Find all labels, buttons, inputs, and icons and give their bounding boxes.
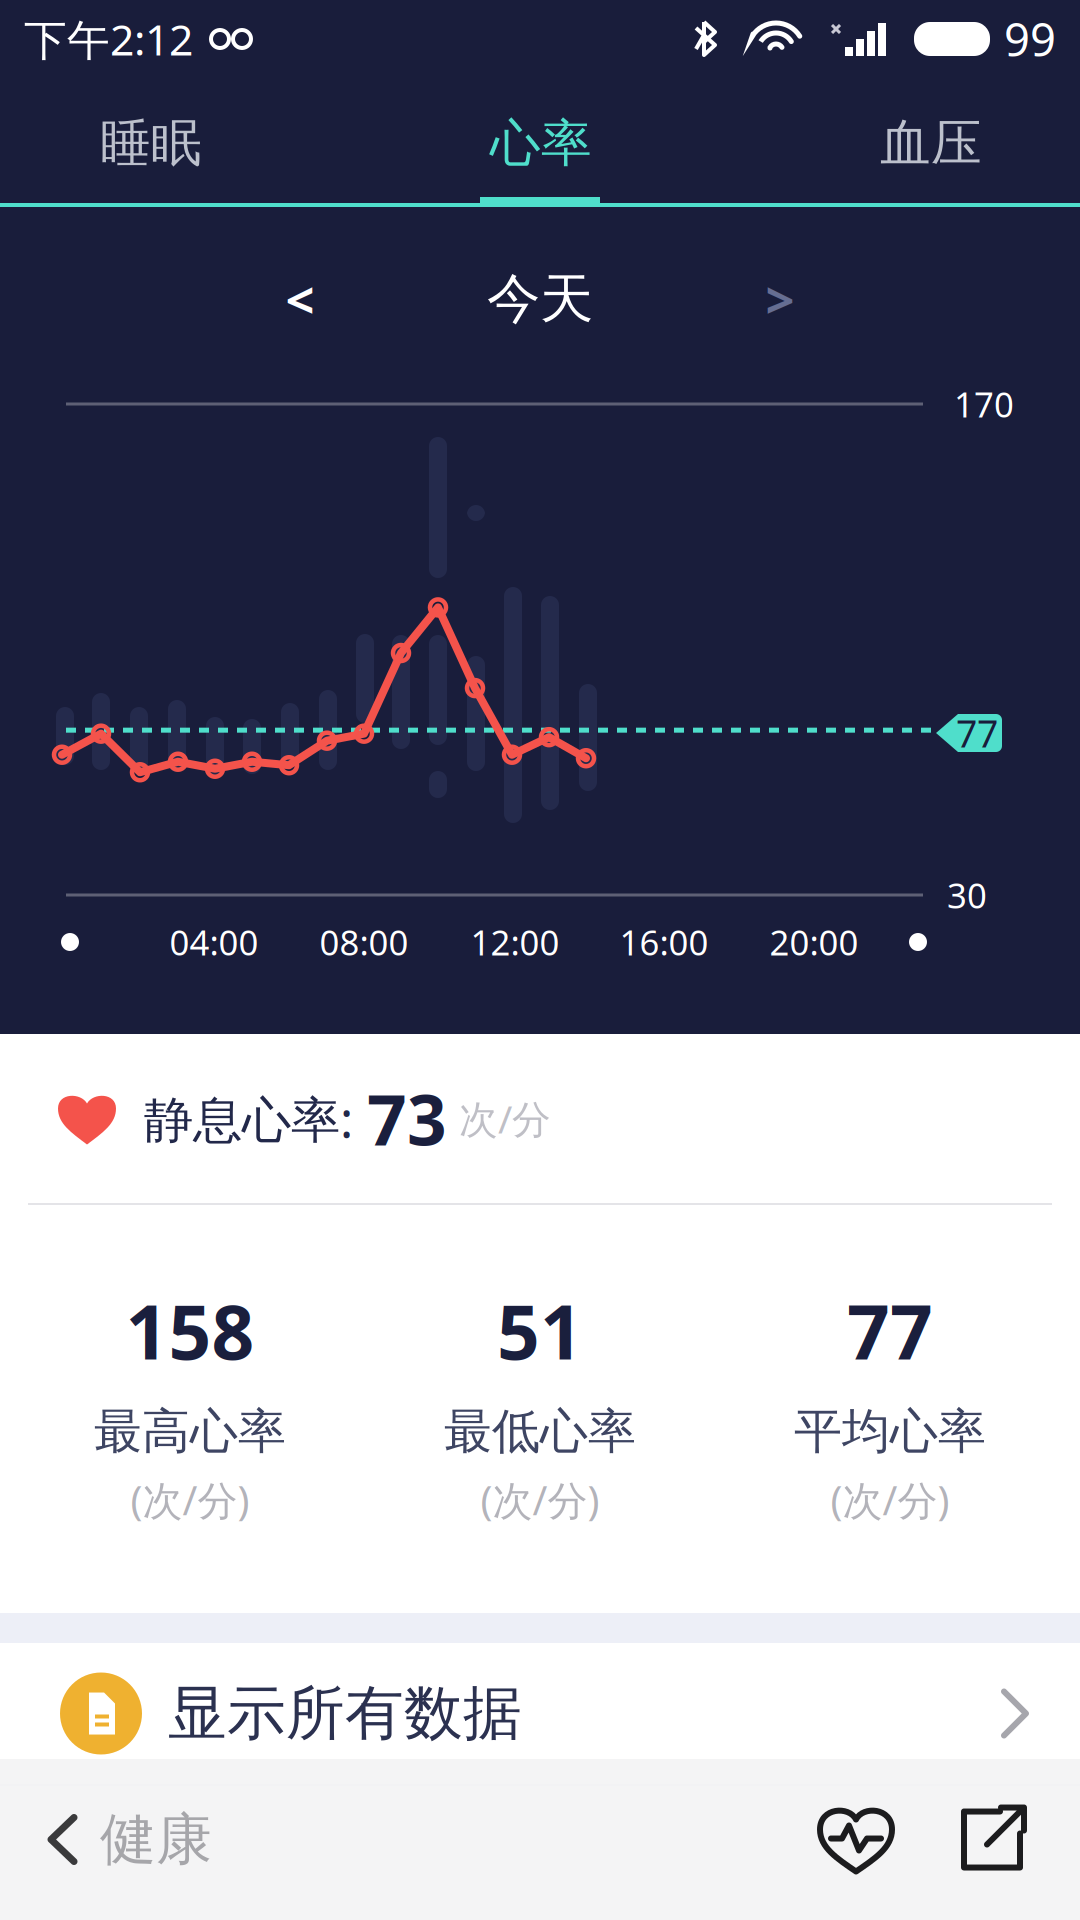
- staticText: (次/分): [480, 1473, 599, 1526]
- staticText: 73: [367, 1072, 447, 1165]
- button[interactable]: 健康: [0, 1759, 252, 1920]
- staticText: 04:00: [169, 919, 258, 965]
- button[interactable]: Health data: [786, 1759, 926, 1920]
- staticText: 30: [947, 872, 987, 918]
- staticText: 平均心率: [794, 1402, 986, 1461]
- button[interactable]: 血压: [836, 78, 1026, 209]
- staticText: 心率: [490, 112, 592, 175]
- staticText: 最高心率: [94, 1402, 286, 1461]
- staticText: 170: [954, 381, 1014, 427]
- staticText: 健康: [100, 1805, 212, 1874]
- staticText: 显示所有数据: [168, 1677, 522, 1750]
- staticText: 静息心率:: [144, 1086, 353, 1151]
- staticText: 158: [125, 1281, 254, 1380]
- staticText: 16:00: [619, 919, 708, 965]
- staticText: 20:00: [769, 919, 858, 965]
- staticText: 51: [497, 1281, 583, 1380]
- staticText: 血压: [880, 112, 982, 175]
- staticText: 下午2:12: [24, 11, 193, 67]
- button[interactable]: 睡眠: [56, 78, 246, 209]
- staticText: 次/分: [459, 1093, 551, 1144]
- button[interactable]: Next day: [720, 249, 840, 349]
- button[interactable]: 显示所有数据: [0, 1643, 1080, 1786]
- staticText: >: [765, 265, 794, 333]
- staticText: 今天: [487, 266, 593, 332]
- staticText: 77: [956, 708, 998, 758]
- staticText: 08:00: [319, 919, 408, 965]
- staticText: (次/分): [130, 1473, 249, 1526]
- staticText: <: [285, 265, 314, 333]
- staticText: 睡眠: [100, 112, 202, 175]
- staticText: 99: [1004, 9, 1056, 69]
- button[interactable]: Previous day: [240, 249, 360, 349]
- staticText: (次/分): [830, 1473, 949, 1526]
- button[interactable]: Share: [926, 1759, 1058, 1920]
- staticText: 77: [847, 1281, 933, 1380]
- button[interactable]: 心率: [446, 78, 636, 209]
- staticText: 12:00: [470, 919, 559, 965]
- staticText: 最低心率: [444, 1402, 636, 1461]
